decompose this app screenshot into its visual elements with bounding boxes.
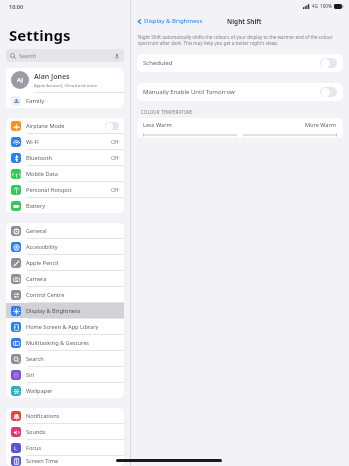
staticText: Control Centre [26,291,65,299]
staticText: General [26,227,47,235]
staticText: Camera [26,275,47,283]
button[interactable]: Notifications [6,408,124,423]
staticText: Night Shift [227,17,262,26]
button[interactable]: Wallpaper [6,383,124,398]
button[interactable] [105,122,119,130]
staticText: Home Screen & App Library [26,323,99,331]
staticText: 10:00 [9,3,24,10]
button[interactable] [143,132,337,138]
staticText: Manually Enable Until Tomorrow [143,88,235,96]
button[interactable]: General [6,223,124,238]
staticText: Night Shift automatically shifts the col… [138,34,342,46]
other: Back [137,19,142,24]
staticText: Mobile Data [26,170,58,178]
staticText: Personal Hotspot [26,186,72,194]
staticText: Family [26,97,45,105]
staticText: Notifications [26,412,60,420]
staticText: Bluetooth [26,154,52,162]
staticText: Wi-Fi [26,138,39,146]
staticText: 4G [312,3,318,9]
button[interactable]: Bluetooth [6,150,124,165]
staticText: Apple Pencil [26,259,59,267]
staticText: Screen Time [26,457,59,465]
button[interactable]: Mobile Data [6,166,124,181]
button[interactable]: Apple Pencil [6,255,124,270]
staticText: Search [19,52,37,59]
staticText: Off [111,186,119,193]
staticText: AJ [17,76,23,84]
button[interactable]: Family [6,93,124,108]
staticText: Scheduled [143,59,173,67]
button[interactable]: Battery [6,198,124,213]
staticText: More Warm [305,121,337,129]
staticText: Airplane Mode [26,122,65,130]
button[interactable]: AJ [6,68,124,92]
button[interactable]: Search [6,49,124,62]
staticText: 100% [320,3,332,9]
staticText: Focus [26,444,42,452]
button[interactable]: Search [6,351,124,366]
button[interactable]: Home Screen & App Library [6,319,124,334]
staticText: Less Warm [143,121,172,129]
staticText: COLOUR TEMPERATURE [141,109,193,115]
button[interactable]: Airplane Mode [6,118,124,133]
button[interactable]: Wi-Fi [6,134,124,149]
button[interactable]: Personal Hotspot [6,182,124,197]
button[interactable]: Camera [6,271,124,286]
staticText: Sounds [26,428,46,436]
staticText: Multitasking & Gestures [26,339,90,347]
staticText: Search [26,355,44,363]
button[interactable]: Control Centre [6,287,124,302]
button[interactable]: Back [135,15,205,27]
button[interactable]: Screen Time [6,456,124,466]
staticText: Off [111,138,119,145]
button[interactable]: Manually Enable Until Tomorrow [137,83,343,101]
staticText: Wallpaper [26,387,53,395]
button[interactable]: Focus [6,440,124,455]
staticText: Battery [26,202,46,210]
button[interactable]: Display & Brightness [6,303,124,318]
button[interactable]: Scheduled [137,54,343,72]
staticText: Display & Brightness [144,17,203,25]
staticText: Apple Account, iCloud and more [34,83,98,89]
staticText: Off [111,154,119,161]
staticText: Settings [9,25,71,45]
button[interactable]: Accessibility [6,239,124,254]
button[interactable]: Multitasking & Gestures [6,335,124,350]
staticText: Siri [26,371,35,379]
staticText: Alan Jones [34,72,70,82]
staticText: Accessibility [26,243,58,251]
staticText: Display & Brightness [26,307,81,315]
button[interactable]: Siri [6,367,124,382]
button[interactable]: Sounds [6,424,124,439]
